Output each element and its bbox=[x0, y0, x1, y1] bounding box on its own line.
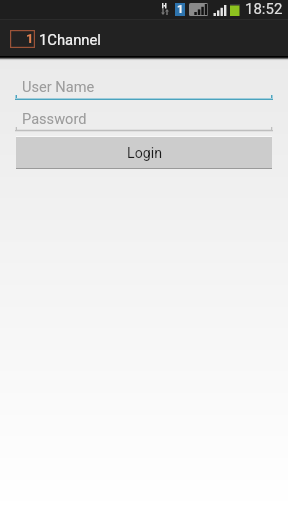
staticText: 18:52 bbox=[245, 0, 283, 18]
button[interactable]: Login bbox=[16, 137, 272, 169]
staticText: Password bbox=[22, 110, 87, 127]
staticText: User Name bbox=[22, 78, 95, 95]
staticText: 1Channel bbox=[39, 31, 101, 48]
staticText: Login bbox=[127, 145, 162, 162]
staticText: 1 bbox=[26, 31, 34, 46]
staticText: 1 bbox=[177, 3, 184, 16]
